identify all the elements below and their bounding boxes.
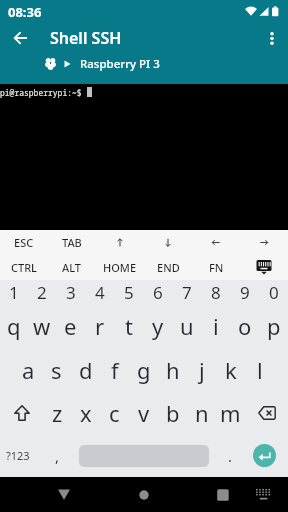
button[interactable]: 9 bbox=[230, 280, 259, 304]
staticText: Shell SSH bbox=[50, 27, 122, 49]
button[interactable]: h bbox=[158, 348, 187, 391]
button[interactable]: j bbox=[187, 348, 216, 391]
staticText: 7 bbox=[182, 281, 192, 304]
staticText: j bbox=[199, 355, 205, 385]
button[interactable] bbox=[0, 391, 43, 434]
button[interactable]: u bbox=[172, 304, 201, 348]
button[interactable] bbox=[240, 255, 288, 280]
button[interactable]: a bbox=[14, 348, 42, 391]
staticText: d bbox=[79, 355, 93, 385]
button[interactable]: 3 bbox=[56, 280, 85, 304]
button[interactable]: 6 bbox=[143, 280, 172, 304]
staticText: CTRL bbox=[11, 260, 37, 275]
staticText: 0 bbox=[269, 281, 279, 304]
button[interactable]: b bbox=[158, 391, 187, 434]
button[interactable] bbox=[203, 477, 243, 512]
button[interactable]: i bbox=[201, 304, 230, 348]
button[interactable]: 0 bbox=[259, 280, 288, 304]
button[interactable] bbox=[44, 477, 84, 512]
button[interactable]: 7 bbox=[172, 280, 201, 304]
button[interactable] bbox=[240, 230, 288, 255]
staticText: 08:36 bbox=[8, 3, 42, 21]
button[interactable]: v bbox=[129, 391, 158, 434]
staticText: u bbox=[180, 311, 194, 341]
button[interactable]: q bbox=[0, 304, 28, 348]
button[interactable]: 2 bbox=[28, 280, 56, 304]
button[interactable] bbox=[245, 434, 288, 477]
button[interactable]: 1 bbox=[0, 280, 28, 304]
staticText: . bbox=[228, 446, 233, 466]
staticText: h bbox=[166, 355, 180, 385]
staticText: o bbox=[238, 311, 252, 341]
button[interactable]: Raspberry PI 3 bbox=[0, 52, 288, 76]
button[interactable]: s bbox=[42, 348, 71, 391]
button[interactable]: e bbox=[56, 304, 85, 348]
button[interactable]: CTRL bbox=[0, 255, 48, 280]
button[interactable] bbox=[144, 230, 192, 255]
staticText: 6 bbox=[153, 281, 163, 304]
button[interactable]: ESC bbox=[0, 230, 48, 255]
staticText: l bbox=[257, 355, 263, 385]
button[interactable]: 8 bbox=[201, 280, 230, 304]
button[interactable]: f bbox=[100, 348, 129, 391]
button[interactable]: m bbox=[216, 391, 245, 434]
staticText: 5 bbox=[124, 281, 134, 304]
button[interactable]: FN bbox=[192, 255, 240, 280]
button[interactable]: w bbox=[28, 304, 56, 348]
button[interactable] bbox=[256, 24, 288, 52]
button[interactable]: o bbox=[230, 304, 259, 348]
staticText: 2 bbox=[37, 281, 47, 304]
staticText: k bbox=[225, 355, 237, 385]
button[interactable] bbox=[0, 24, 40, 52]
button[interactable]: p bbox=[259, 304, 288, 348]
staticText: , bbox=[55, 446, 60, 466]
button[interactable]: l bbox=[245, 348, 274, 391]
button[interactable]: ?123 bbox=[0, 434, 43, 477]
button[interactable] bbox=[245, 391, 288, 434]
button[interactable]: END bbox=[144, 255, 192, 280]
button[interactable]: TAB bbox=[48, 230, 96, 255]
button[interactable]: x bbox=[71, 391, 100, 434]
staticText: pi@raspberrypi:~$ bbox=[0, 87, 87, 98]
staticText: b bbox=[166, 398, 180, 428]
staticText: FN bbox=[209, 260, 224, 275]
staticText: n bbox=[195, 398, 209, 428]
button[interactable]: y bbox=[143, 304, 172, 348]
staticText: m bbox=[220, 398, 241, 428]
staticText: 3 bbox=[66, 281, 76, 304]
staticText: 1 bbox=[9, 281, 19, 304]
staticText: HOME bbox=[103, 260, 137, 275]
button[interactable]: k bbox=[216, 348, 245, 391]
button[interactable]: d bbox=[71, 348, 100, 391]
button[interactable]: z bbox=[43, 391, 71, 434]
staticText: TAB bbox=[62, 235, 82, 250]
staticText: f bbox=[111, 355, 119, 385]
button[interactable] bbox=[245, 477, 281, 512]
button[interactable] bbox=[124, 477, 164, 512]
staticText: ESC bbox=[14, 235, 34, 250]
staticText: q bbox=[7, 311, 21, 341]
staticText: i bbox=[213, 311, 219, 341]
button[interactable]: 4 bbox=[85, 280, 114, 304]
button[interactable] bbox=[96, 230, 144, 255]
button[interactable]: n bbox=[187, 391, 216, 434]
button[interactable] bbox=[79, 434, 209, 477]
button[interactable]: HOME bbox=[96, 255, 144, 280]
staticText: v bbox=[138, 398, 150, 428]
button[interactable]: 5 bbox=[114, 280, 143, 304]
button[interactable] bbox=[192, 230, 240, 255]
staticText: g bbox=[137, 355, 151, 385]
button[interactable]: r bbox=[85, 304, 114, 348]
button[interactable]: t bbox=[114, 304, 143, 348]
button[interactable]: g bbox=[129, 348, 158, 391]
staticText: e bbox=[64, 311, 77, 341]
staticText: ALT bbox=[62, 260, 82, 275]
button[interactable]: ALT bbox=[48, 255, 96, 280]
staticText: END bbox=[157, 260, 180, 275]
staticText: z bbox=[52, 398, 63, 428]
staticText: t bbox=[125, 311, 133, 341]
staticText: x bbox=[80, 398, 92, 428]
button[interactable]: c bbox=[100, 391, 129, 434]
button[interactable]: , bbox=[43, 434, 72, 477]
button[interactable]: . bbox=[216, 434, 245, 477]
